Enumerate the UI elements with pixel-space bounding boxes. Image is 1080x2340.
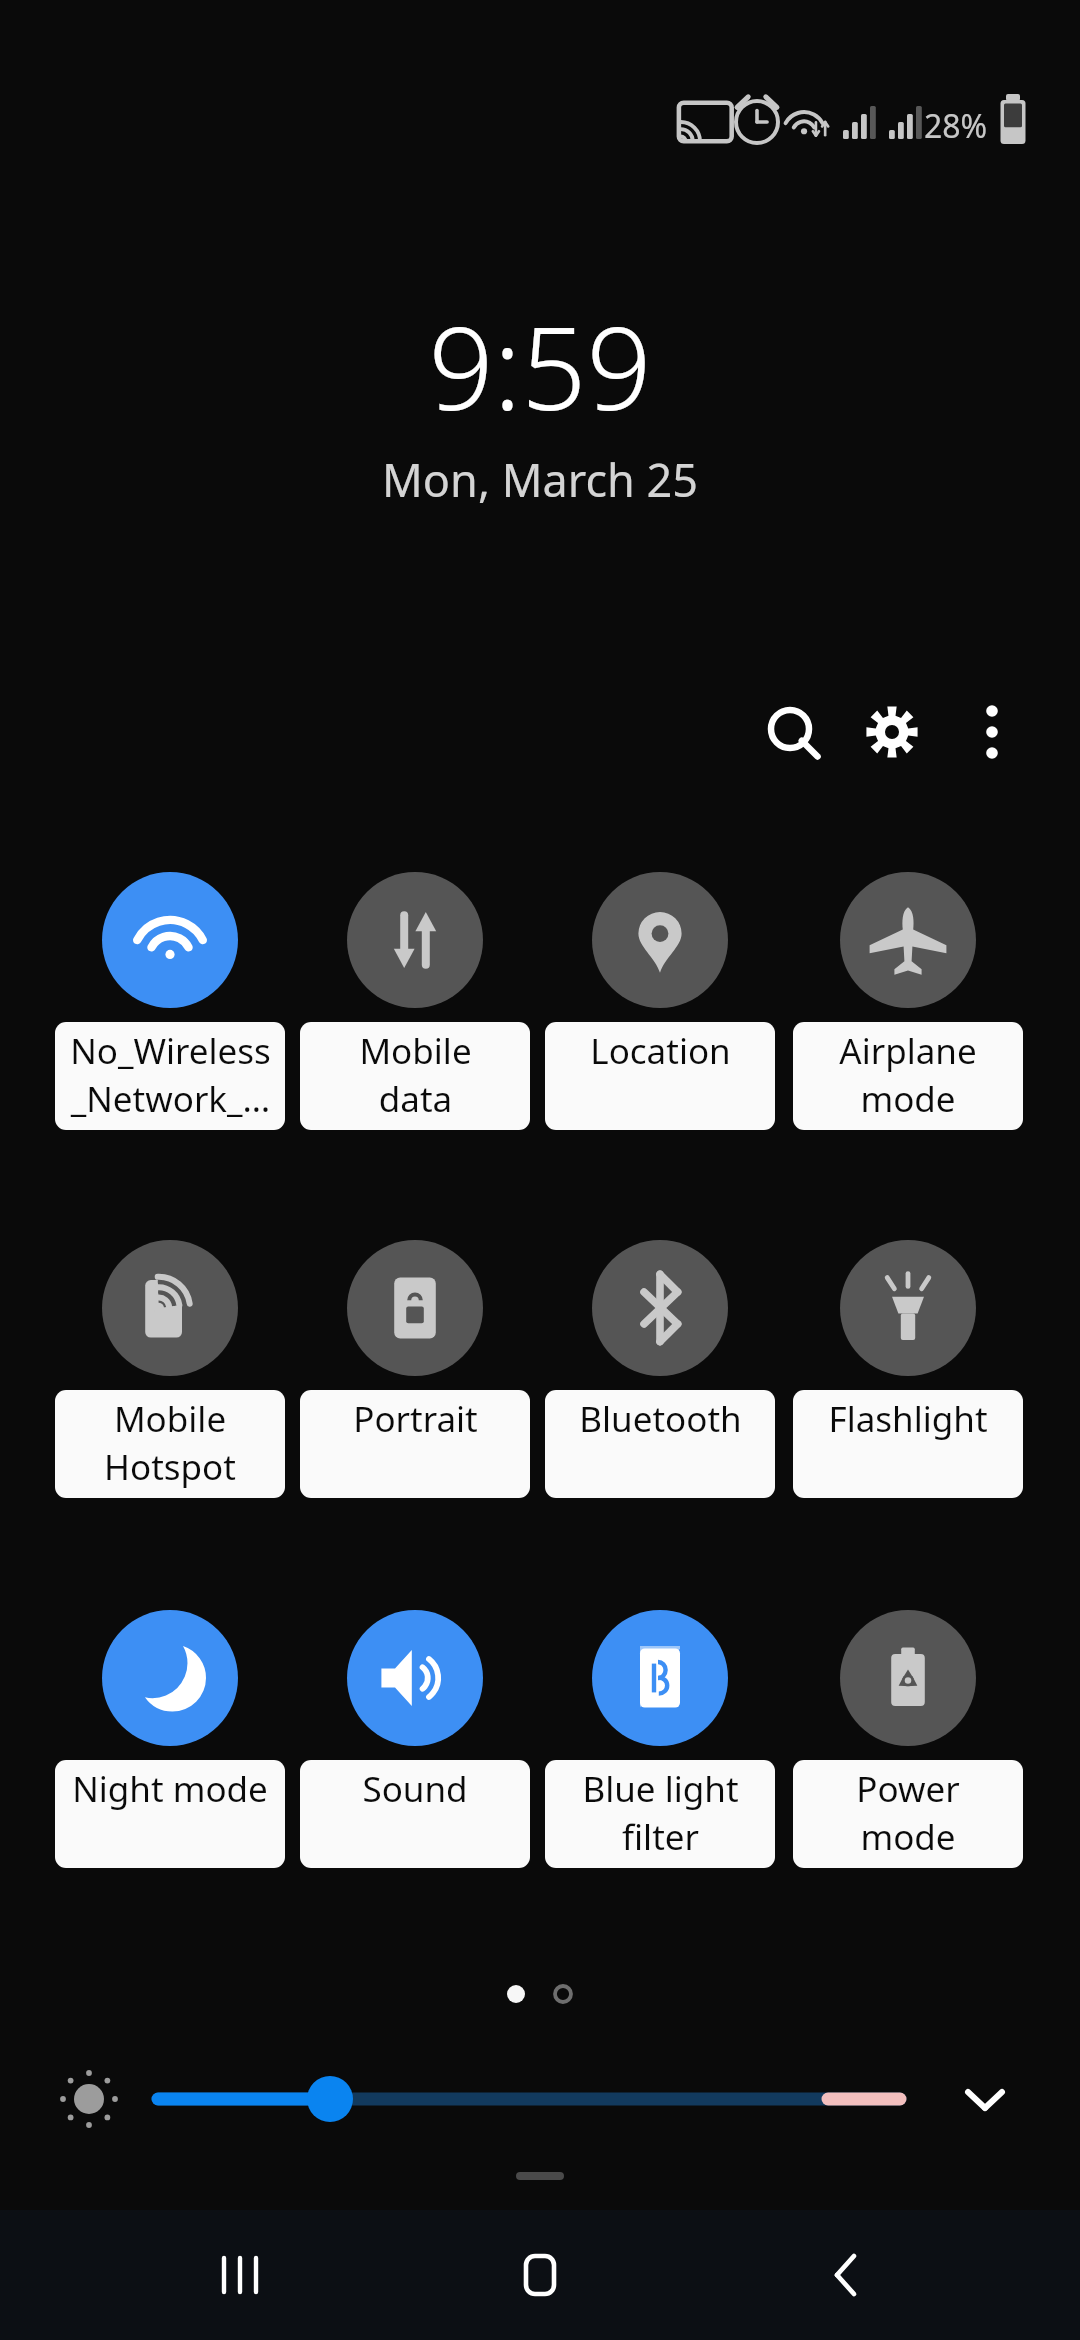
staticText: Portrait: [353, 1395, 478, 1443]
staticText: No_Wireless _Network_…: [70, 1027, 271, 1122]
staticText: Mobile Hotspot: [104, 1395, 236, 1490]
button[interactable]: No_Wireless _Network_…: [55, 872, 285, 1130]
button[interactable]: Location: [545, 872, 775, 1130]
button[interactable]: Back: [720, 2210, 1080, 2340]
button[interactable]: Sound: [300, 1610, 530, 1868]
button[interactable]: Portrait: [300, 1240, 530, 1498]
staticText: 28%: [924, 104, 988, 148]
button[interactable]: Bluetooth: [545, 1240, 775, 1498]
staticText: Night mode: [72, 1765, 268, 1813]
button[interactable]: Blue light filter: [545, 1610, 775, 1868]
button[interactable]: Power mode: [793, 1610, 1023, 1868]
button[interactable]: Flashlight: [793, 1240, 1023, 1498]
staticText: Airplane mode: [839, 1027, 977, 1122]
button[interactable]: Recent apps: [0, 2210, 360, 2340]
button[interactable]: Airplane mode: [793, 872, 1023, 1130]
staticText: Flashlight: [828, 1395, 988, 1443]
staticText: Mon, March 25: [382, 449, 698, 510]
button[interactable]: Home: [360, 2210, 720, 2340]
button[interactable]: Mobile data: [300, 872, 530, 1130]
staticText: Mobile data: [359, 1027, 472, 1122]
button[interactable]: More options: [952, 692, 1032, 772]
button[interactable]: Brightness slider: [140, 2058, 920, 2140]
staticText: Blue light filter: [582, 1765, 739, 1860]
button[interactable]: Expand quick settings: [944, 2058, 1026, 2140]
button[interactable]: Night mode: [55, 1610, 285, 1868]
button[interactable]: Settings: [852, 692, 932, 772]
staticText: Power mode: [856, 1765, 960, 1860]
staticText: Bluetooth: [579, 1395, 742, 1443]
staticText: Sound: [362, 1765, 468, 1813]
button[interactable]: Brightness: [48, 2058, 130, 2140]
button[interactable]: Search: [752, 692, 832, 772]
button[interactable]: Mobile Hotspot: [55, 1240, 285, 1498]
staticText: Location: [590, 1027, 731, 1075]
staticText: 9:59: [428, 288, 652, 443]
